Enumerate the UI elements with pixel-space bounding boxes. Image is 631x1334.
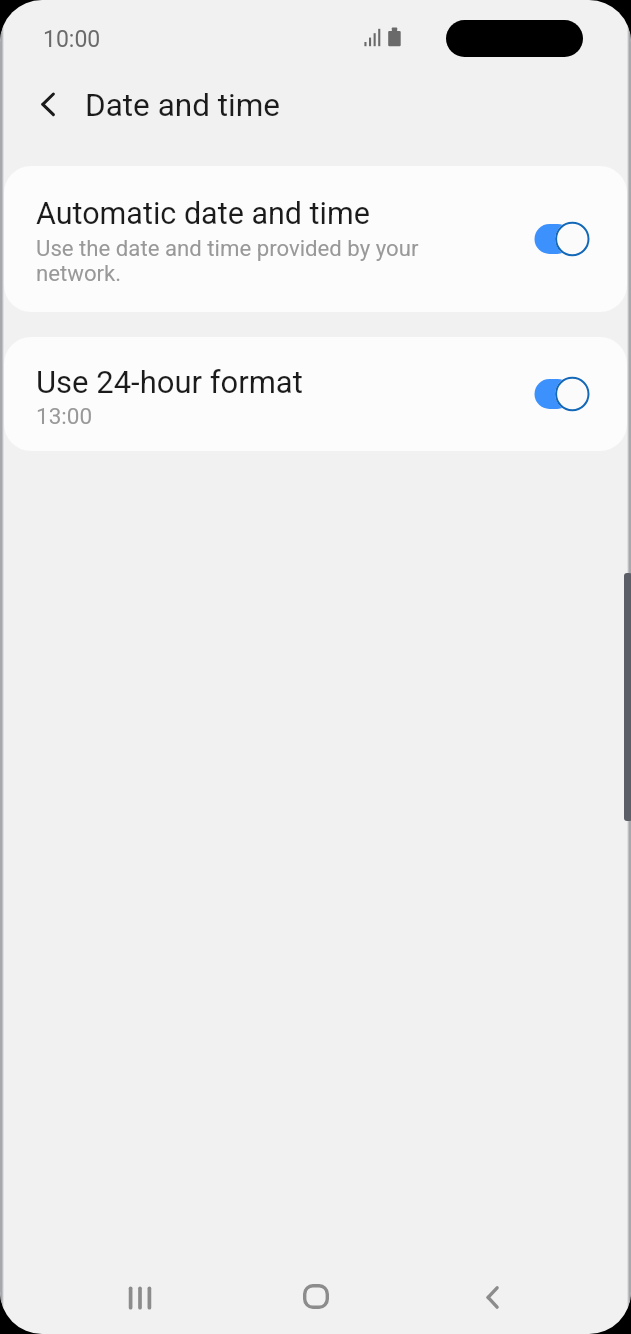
button[interactable]: Toggle switch, on — [533, 219, 591, 259]
staticText: Automatic date and time — [36, 196, 370, 232]
button[interactable]: Automatic date and time — [4, 166, 627, 312]
button[interactable]: Use 24-hour format — [4, 337, 627, 451]
button[interactable]: Recent apps — [100, 1260, 180, 1334]
button[interactable]: Toggle switch, on — [533, 374, 591, 414]
staticText: 13:00 — [36, 403, 93, 429]
staticText: 10:00 — [43, 26, 101, 53]
staticText: Date and time — [85, 87, 281, 124]
button[interactable]: Home — [276, 1258, 356, 1334]
staticText: Use 24-hour format — [36, 364, 303, 400]
button[interactable]: Back — [452, 1258, 532, 1334]
button[interactable]: Navigate up — [26, 82, 70, 126]
staticText: Use the date and time provided by your n… — [36, 235, 419, 287]
